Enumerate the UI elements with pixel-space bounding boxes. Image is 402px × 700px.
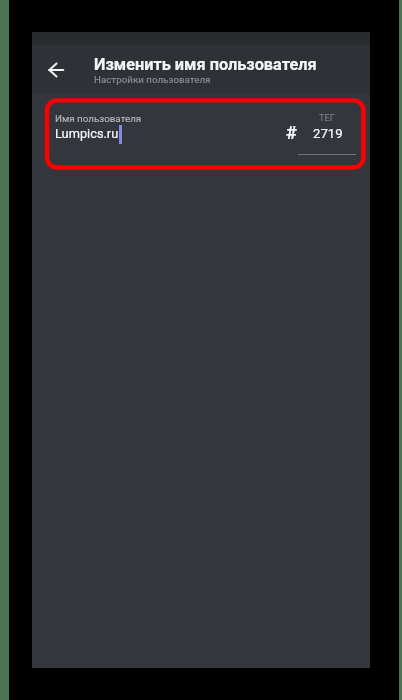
staticText: 2719 [313, 126, 343, 141]
staticText: # [286, 122, 297, 144]
button[interactable]: Имя пользователя [50, 104, 275, 156]
button[interactable]: ТЕГ [280, 104, 362, 156]
staticText: Настройки пользователя [94, 74, 211, 85]
staticText: ТЕГ [319, 112, 335, 123]
staticText: Lumpics.ru [55, 126, 119, 141]
staticText: Изменить имя пользователя [94, 55, 317, 74]
staticText: Имя пользователя [55, 113, 142, 124]
button[interactable]: Back [35, 49, 77, 91]
